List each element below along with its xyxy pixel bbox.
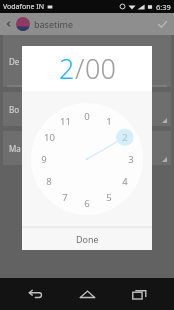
staticText: 8 <box>46 175 52 188</box>
button[interactable]: Ma <box>3 131 171 165</box>
button[interactable]: 0 <box>78 107 96 125</box>
staticText: basetime <box>34 18 74 30</box>
button[interactable]: 11 <box>56 112 74 130</box>
staticText: 2 <box>122 131 128 144</box>
staticText: 5 <box>106 191 112 204</box>
button[interactable]: 8 <box>40 172 58 190</box>
staticText: Vodafone IN <box>3 2 44 12</box>
staticText: Bo <box>9 104 20 115</box>
button[interactable]: 9 <box>35 150 53 168</box>
staticText: 9 <box>41 153 47 166</box>
staticText: Ma <box>9 143 21 154</box>
button[interactable]: 6 <box>78 194 96 212</box>
button[interactable]: 7 <box>56 188 74 206</box>
button[interactable]: Done <box>22 227 152 250</box>
button[interactable]: Bo <box>3 92 171 126</box>
button[interactable]: Recent apps <box>122 278 156 310</box>
staticText: Done <box>76 233 99 245</box>
staticText: 11 <box>60 115 71 128</box>
staticText: 6 <box>84 197 90 210</box>
staticText: 7 <box>62 191 68 204</box>
button[interactable]: Back <box>4 19 14 29</box>
button[interactable]: 2 <box>116 128 134 146</box>
staticText: 00 <box>85 50 116 87</box>
button[interactable]: 1 <box>100 112 118 130</box>
button[interactable]: 00 <box>85 50 116 87</box>
button[interactable]: De <box>3 35 171 87</box>
staticText: 6:39 <box>156 2 171 12</box>
button[interactable]: Back <box>18 278 52 310</box>
staticText: 4 <box>122 175 128 188</box>
button[interactable]: Save <box>154 16 170 32</box>
staticText: / <box>75 50 85 87</box>
staticText: 2 <box>59 50 75 87</box>
button[interactable]: 10 <box>40 128 58 146</box>
staticText: 1 <box>106 115 112 128</box>
button[interactable]: 2 <box>59 50 75 87</box>
staticText: De <box>9 56 20 67</box>
staticText: 3 <box>128 153 134 166</box>
button[interactable]: Home <box>70 278 104 310</box>
button[interactable]: 4 <box>116 172 134 190</box>
staticText: 0 <box>84 110 90 123</box>
staticText: 10 <box>44 131 55 144</box>
button[interactable]: 3 <box>122 150 140 168</box>
button[interactable]: 5 <box>100 188 118 206</box>
